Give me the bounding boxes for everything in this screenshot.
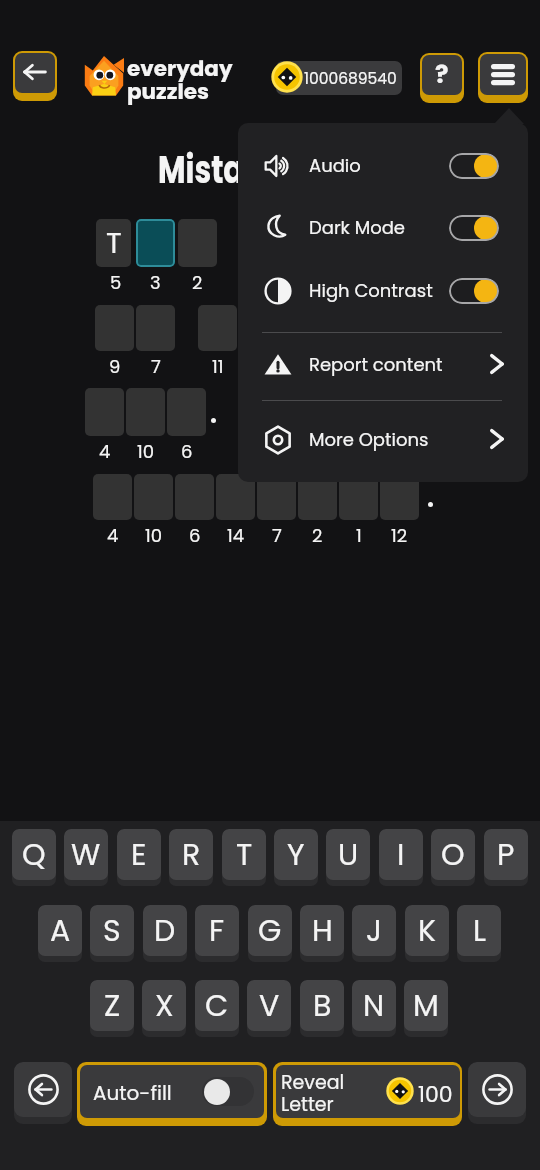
button[interactable] — [93, 474, 132, 520]
staticText: F — [209, 910, 225, 952]
button[interactable]: Auto-fill — [77, 1062, 267, 1126]
staticText: D — [154, 910, 176, 952]
button[interactable] — [175, 474, 214, 520]
staticText: A — [50, 910, 71, 952]
button[interactable]: Menu — [478, 52, 528, 103]
button[interactable]: U — [326, 829, 370, 886]
staticText: 11 — [212, 354, 224, 379]
staticText: Reveal — [281, 1069, 345, 1096]
staticText: 3 — [150, 270, 161, 295]
staticText: S — [103, 910, 121, 952]
button[interactable] — [134, 474, 173, 520]
button[interactable] — [339, 474, 378, 520]
staticText: 7 — [151, 354, 161, 379]
staticText: 14 — [227, 523, 245, 548]
staticText: P — [497, 834, 515, 876]
button[interactable] — [298, 474, 337, 520]
staticText: 2 — [192, 270, 203, 295]
button[interactable]: 1000689540 — [271, 60, 397, 94]
button[interactable]: B — [300, 980, 344, 1037]
button[interactable]: H — [300, 905, 344, 962]
button[interactable]: More Options — [238, 409, 528, 471]
button[interactable]: J — [352, 905, 396, 962]
staticText: 1000689540 — [304, 68, 397, 90]
staticText: G — [258, 910, 282, 952]
staticText: High Contrast — [309, 278, 433, 303]
staticText: 7 — [272, 523, 282, 548]
staticText: E — [131, 834, 147, 876]
staticText: ? — [435, 57, 449, 92]
button[interactable]: Report content — [238, 334, 528, 396]
button[interactable]: Q — [12, 829, 56, 886]
button[interactable]: G — [248, 905, 292, 962]
button[interactable]: R — [169, 829, 213, 886]
staticText: T — [106, 223, 122, 264]
staticText: Mistakes — [158, 143, 298, 196]
button[interactable]: F — [195, 905, 239, 962]
button[interactable]: O — [431, 829, 475, 886]
staticText: C — [205, 985, 229, 1027]
button[interactable]: M — [404, 980, 448, 1037]
button[interactable]: Z — [90, 980, 134, 1037]
button[interactable]: X — [142, 980, 186, 1037]
staticText: X — [155, 985, 174, 1027]
button[interactable]: Audio — [238, 135, 528, 197]
staticText: B — [313, 985, 332, 1027]
button[interactable]: T — [96, 219, 131, 267]
button[interactable] — [198, 305, 237, 351]
staticText: Report content — [309, 352, 443, 377]
button[interactable] — [167, 388, 206, 436]
button[interactable]: everyday — [84, 50, 190, 90]
button[interactable]: Reveal — [273, 1062, 462, 1126]
staticText: Y — [287, 834, 305, 876]
button[interactable] — [239, 305, 278, 351]
button[interactable] — [85, 388, 124, 436]
staticText: L — [473, 910, 486, 952]
staticText: 4 — [99, 439, 111, 464]
staticText: 5 — [110, 270, 122, 295]
button[interactable] — [136, 219, 175, 267]
button[interactable]: Y — [274, 829, 318, 886]
button[interactable]: C — [195, 980, 239, 1037]
button[interactable] — [257, 474, 296, 520]
button[interactable]: D — [143, 905, 187, 962]
button[interactable]: P — [484, 829, 528, 886]
button[interactable] — [126, 388, 165, 436]
staticText: H — [312, 910, 333, 952]
button[interactable] — [95, 305, 134, 351]
staticText: 2 — [312, 523, 323, 548]
staticText: 6 — [181, 439, 193, 464]
staticText: R — [182, 834, 201, 876]
button[interactable] — [178, 219, 217, 267]
staticText: O — [441, 834, 465, 876]
staticText: 9 — [109, 354, 121, 379]
staticText: W — [71, 834, 101, 876]
button[interactable]: N — [352, 980, 396, 1037]
staticText: 10 — [137, 439, 155, 464]
button[interactable]: I — [379, 829, 423, 886]
button[interactable]: Previous clue — [14, 1062, 72, 1124]
button[interactable]: Dark Mode — [238, 197, 528, 259]
button[interactable]: A — [38, 905, 82, 962]
button[interactable]: T — [222, 829, 266, 886]
button[interactable] — [216, 474, 255, 520]
staticText: 10 — [145, 523, 163, 548]
staticText: J — [366, 910, 382, 952]
button[interactable]: Back — [13, 51, 57, 101]
staticText: everyday — [127, 53, 233, 83]
button[interactable]: Help — [420, 53, 464, 103]
button[interactable]: High Contrast — [238, 260, 528, 322]
button[interactable]: W — [64, 829, 108, 886]
staticText: 6 — [189, 523, 201, 548]
button[interactable]: K — [405, 905, 449, 962]
staticText: Audio — [309, 153, 361, 178]
button[interactable]: E — [117, 829, 161, 886]
button[interactable]: S — [90, 905, 134, 962]
button[interactable] — [136, 305, 175, 351]
button[interactable] — [380, 474, 419, 520]
button[interactable]: V — [247, 980, 291, 1037]
button[interactable]: Next clue — [468, 1062, 526, 1124]
staticText: Letter — [281, 1091, 334, 1118]
staticText: 12 — [391, 523, 408, 548]
button[interactable]: L — [457, 905, 501, 962]
